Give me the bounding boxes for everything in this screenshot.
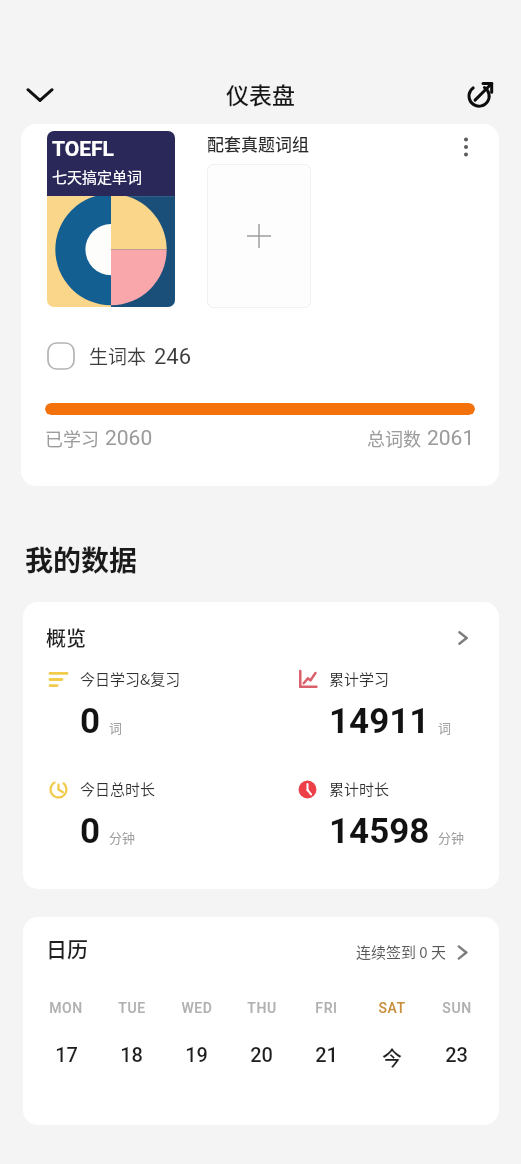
staticText: MON (49, 1000, 83, 1016)
button[interactable]: More options (449, 130, 483, 164)
staticText: 概览 (46, 623, 86, 652)
staticText: 累计学习 (329, 668, 390, 690)
staticText: TUE (118, 1000, 146, 1016)
staticText: 仪表盘 (226, 77, 295, 110)
button[interactable]: 20 (229, 1043, 294, 1066)
button[interactable]: 生词本 (47, 342, 192, 370)
button[interactable]: 累计时长 (296, 778, 499, 852)
staticText: 今 (382, 1043, 402, 1072)
staticText: 已学习 (45, 425, 99, 451)
button[interactable]: 今日学习&复习 (47, 668, 296, 742)
staticText: 分钟 (438, 828, 465, 847)
staticText: 今日学习&复习 (80, 668, 181, 690)
staticText: 词 (438, 718, 452, 737)
staticText: 20 (250, 1043, 273, 1066)
staticText: 总词数 (367, 425, 421, 451)
staticText: 今日总时长 (80, 778, 156, 800)
staticText: 2060 (105, 426, 153, 451)
staticText: 19 (185, 1043, 208, 1066)
staticText: THU (247, 1000, 277, 1016)
staticText: WED (181, 1000, 213, 1016)
staticText: 分钟 (109, 828, 136, 847)
button[interactable]: 18 (99, 1043, 164, 1066)
staticText: FRI (315, 1000, 338, 1016)
button[interactable]: 概览 (46, 623, 473, 652)
button[interactable]: 累计学习 (296, 668, 499, 742)
button[interactable] (207, 164, 311, 308)
staticText: TOEFL (52, 137, 114, 162)
staticText: 生词本 (89, 342, 147, 370)
button[interactable]: Collapse (17, 72, 63, 118)
staticText: 日历 (46, 933, 88, 963)
staticText: 18 (120, 1043, 143, 1066)
button[interactable]: 21 (294, 1043, 359, 1066)
staticText: 累计时长 (329, 778, 390, 800)
staticText: 我的数据 (25, 539, 138, 580)
staticText: 246 (154, 344, 192, 370)
button[interactable]: 连续签到 0 天 (356, 941, 473, 963)
staticText: 连续签到 0 天 (356, 941, 447, 963)
staticText: SUN (442, 1000, 472, 1016)
staticText: 配套真题词组 (207, 131, 309, 156)
staticText: 23 (445, 1043, 468, 1066)
button[interactable]: TOEFL (47, 131, 175, 307)
staticText: 14911 (329, 701, 430, 742)
staticText: 21 (315, 1043, 338, 1066)
staticText: 七天搞定单词 (52, 166, 143, 188)
button[interactable]: 17 (33, 1043, 99, 1066)
button[interactable]: 今 (359, 1043, 424, 1072)
staticText: 2061 (427, 426, 475, 451)
button[interactable]: 今日总时长 (47, 778, 296, 852)
staticText: 0 (80, 701, 101, 742)
staticText: 0 (80, 811, 101, 852)
button[interactable]: 19 (164, 1043, 229, 1066)
staticText: 17 (55, 1043, 78, 1066)
button[interactable]: 23 (424, 1043, 489, 1066)
staticText: 词 (109, 718, 123, 737)
staticText: SAT (378, 1000, 406, 1016)
button[interactable]: Share (458, 71, 504, 117)
staticText: 14598 (329, 811, 430, 852)
